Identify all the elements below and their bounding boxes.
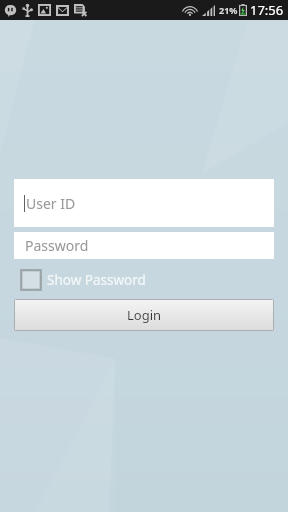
button[interactable]: Login bbox=[14, 299, 274, 331]
staticText: Show Password bbox=[47, 271, 146, 289]
button[interactable]: Password bbox=[14, 232, 274, 259]
staticText: Password bbox=[25, 236, 89, 255]
staticText: 21% bbox=[219, 4, 238, 16]
staticText: User ID bbox=[26, 194, 76, 213]
button[interactable]: Show Password bbox=[20, 267, 154, 293]
button[interactable]: User ID bbox=[14, 179, 274, 227]
staticText: Login bbox=[127, 306, 162, 324]
staticText: 17:56 bbox=[250, 1, 284, 19]
